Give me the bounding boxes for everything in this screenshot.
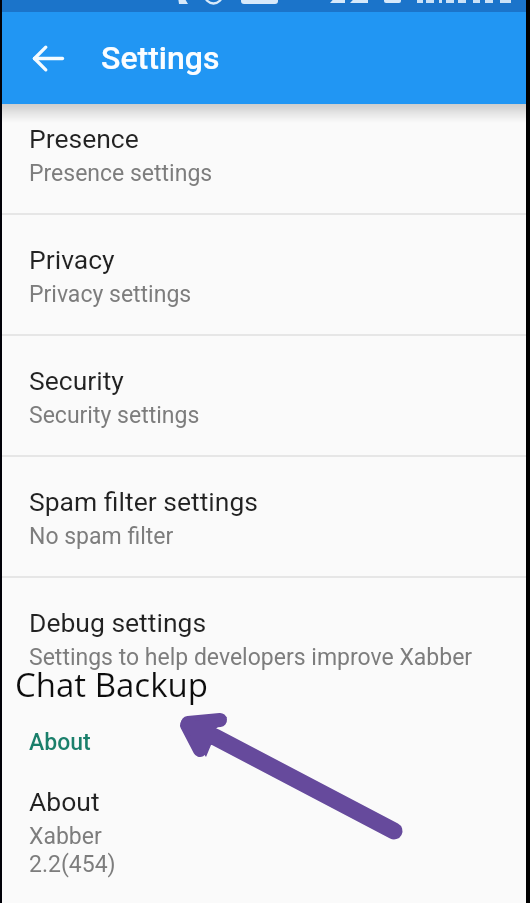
staticText: About [29,729,91,756]
staticText: Settings to help developers improve Xabb… [29,644,473,671]
staticText: Presence [29,123,139,154]
button[interactable]: Debug settings [0,578,530,697]
button[interactable]: Privacy [0,215,530,334]
button[interactable]: About [0,757,530,876]
staticText: Debug settings [29,607,207,638]
staticText: Security settings [29,402,200,429]
button[interactable]: Back [14,24,82,92]
staticText: Spam filter settings [29,486,258,517]
button[interactable]: Presence [0,94,530,213]
staticText: Chat Backup [15,662,208,707]
staticText: Xabber 2.2(454) [29,823,116,877]
staticText: Privacy [29,244,115,275]
staticText: Settings [101,39,220,77]
staticText: Presence settings [29,160,213,187]
staticText: Security [29,365,124,396]
button[interactable]: Security [0,336,530,455]
button[interactable]: Spam filter settings [0,457,530,576]
staticText: No spam filter [29,523,174,550]
staticText: Privacy settings [29,281,192,308]
staticText: About [29,786,100,817]
